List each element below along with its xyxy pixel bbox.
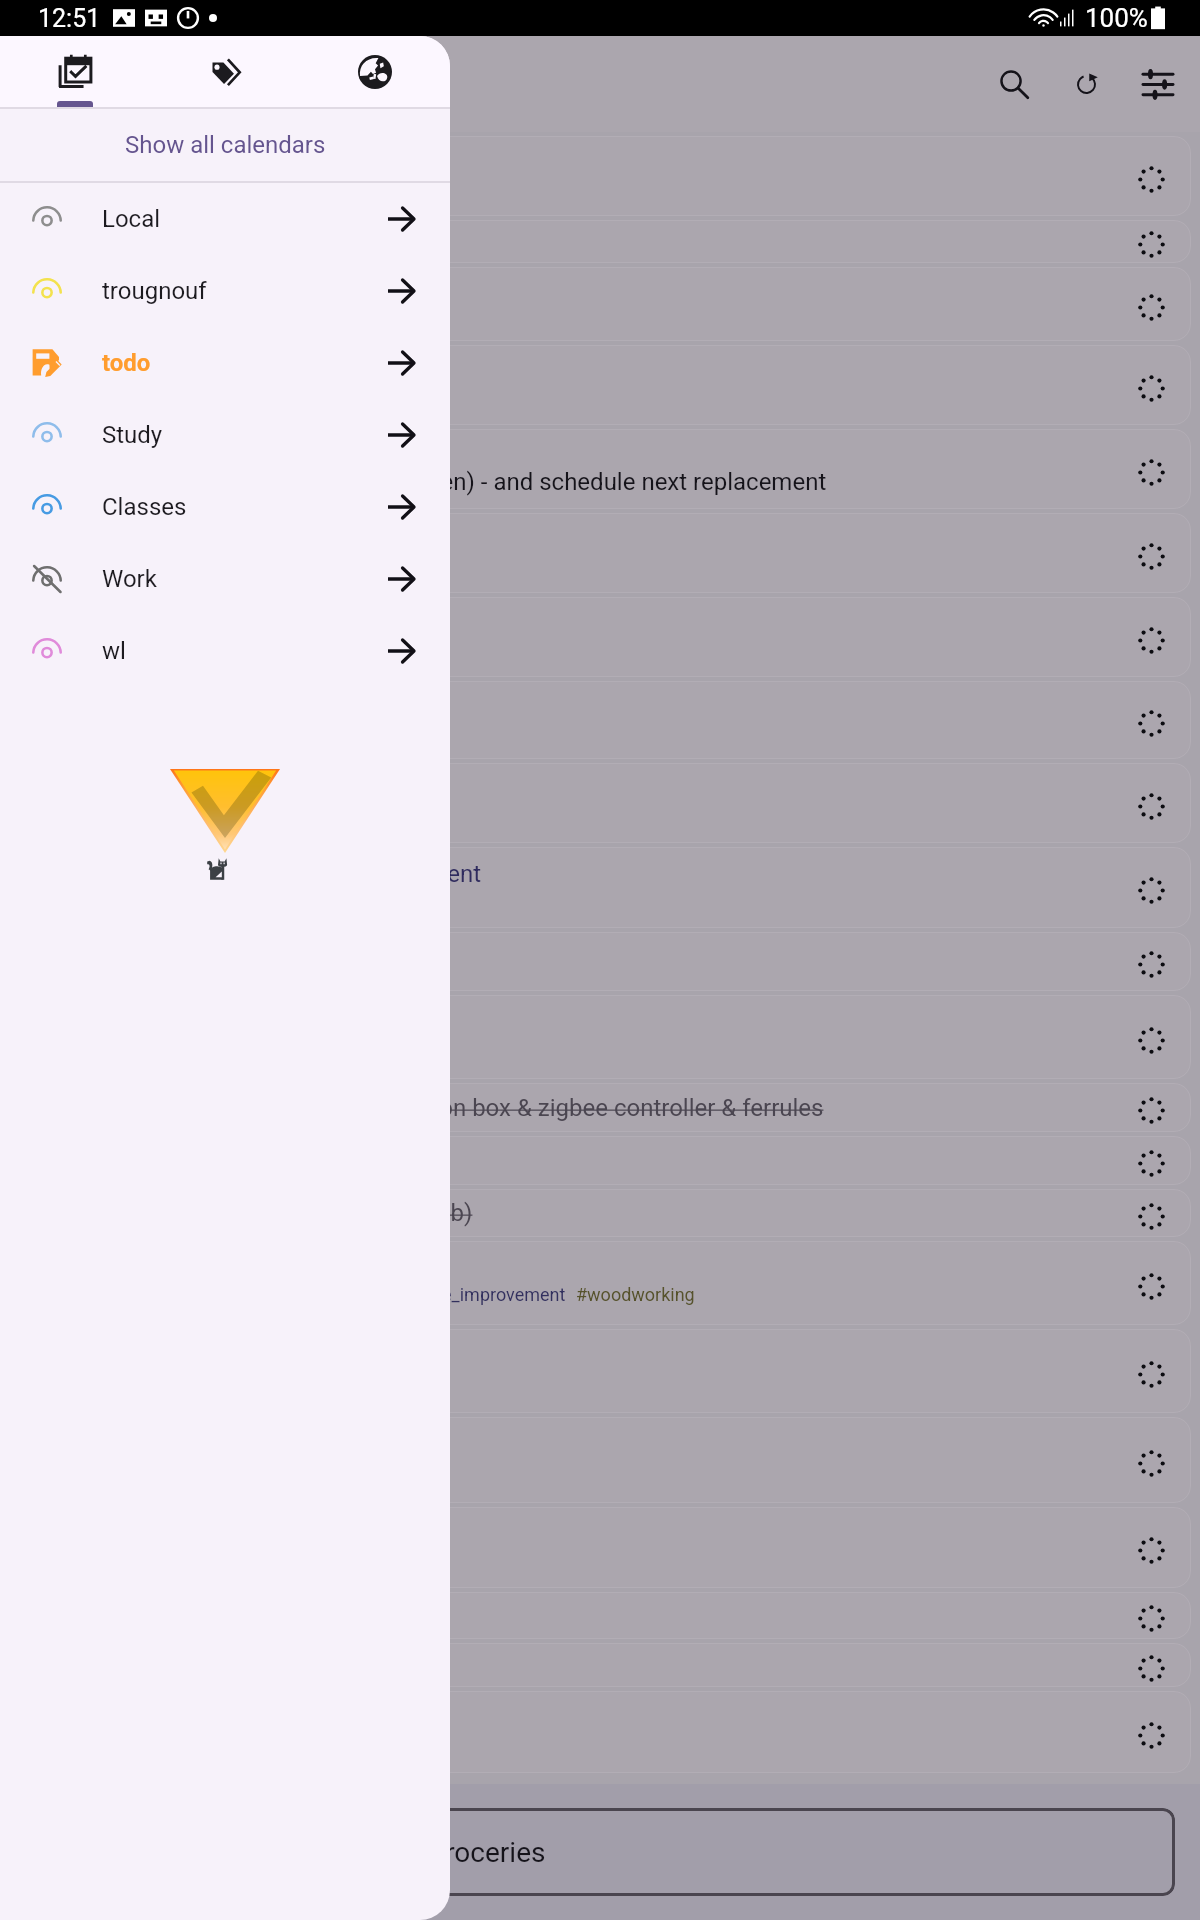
staticText: Replace water filter (kitchen) - and sch…	[170, 468, 827, 496]
staticText: Local	[102, 205, 161, 233]
button[interactable]	[9, 995, 1191, 1079]
staticText: Measure shelf (depth & height, note jamb…	[27, 1199, 473, 1227]
staticText: #home_improvement	[395, 1284, 566, 1305]
button[interactable]	[9, 345, 1191, 425]
staticText: Order junction box & zigbee controller &…	[316, 1094, 824, 1122]
button[interactable]: Measure shelf (depth & height, note jamb…	[9, 1189, 1191, 1237]
staticText: Work	[102, 565, 157, 593]
button[interactable]: Classes	[0, 471, 450, 543]
button[interactable]	[9, 1691, 1191, 1773]
staticText: Buy Groceries	[373, 1836, 546, 1869]
button[interactable]	[9, 220, 1191, 263]
button[interactable]	[9, 1643, 1191, 1687]
staticText: Fix bathroom light replacement	[149, 860, 482, 888]
button[interactable]: Search	[978, 48, 1050, 120]
button[interactable]	[9, 681, 1191, 759]
staticText: Show all calendars	[125, 131, 326, 159]
button[interactable]: trougnouf	[0, 255, 450, 327]
button[interactable]: wl	[0, 615, 450, 687]
button[interactable]	[9, 1136, 1191, 1185]
button[interactable]: Replace water filter (kitchen) - and sch…	[9, 429, 1191, 509]
button[interactable]	[9, 1592, 1191, 1639]
staticText: trougnouf	[102, 277, 207, 305]
staticText: 100%	[1085, 3, 1148, 33]
button[interactable]: Filter	[1122, 48, 1194, 120]
button[interactable]	[9, 597, 1191, 677]
button[interactable]	[9, 1417, 1191, 1503]
button[interactable]	[9, 763, 1191, 843]
staticText: Study	[102, 421, 163, 449]
button[interactable]: Study	[0, 399, 450, 471]
button[interactable]: Refresh	[1050, 48, 1122, 120]
staticText: #woodworking	[576, 1284, 695, 1305]
staticText: Classes	[102, 493, 187, 521]
button[interactable]: Order junction box & zigbee controller &…	[9, 1083, 1191, 1132]
button[interactable]: Lists	[0, 36, 150, 107]
staticText: 12:51	[38, 4, 101, 33]
staticText: todo	[102, 349, 151, 377]
staticText: wl	[102, 637, 126, 665]
button[interactable]: Show all calendars	[0, 109, 450, 181]
button[interactable]: Fix bathroom light replacement	[9, 847, 1191, 928]
button[interactable]: #home_improvement	[9, 1241, 1191, 1325]
button[interactable]: Places	[300, 36, 450, 107]
button[interactable]	[9, 932, 1191, 991]
button[interactable]: Work	[0, 543, 450, 615]
button[interactable]: Tags	[150, 36, 300, 107]
button[interactable]	[9, 267, 1191, 341]
button[interactable]: Buy Groceries	[25, 1808, 1175, 1896]
button[interactable]: todo	[0, 327, 450, 399]
button[interactable]	[9, 1507, 1191, 1588]
button[interactable]	[9, 1329, 1191, 1413]
button[interactable]	[9, 136, 1191, 216]
button[interactable]: Local	[0, 183, 450, 255]
button[interactable]	[9, 513, 1191, 593]
